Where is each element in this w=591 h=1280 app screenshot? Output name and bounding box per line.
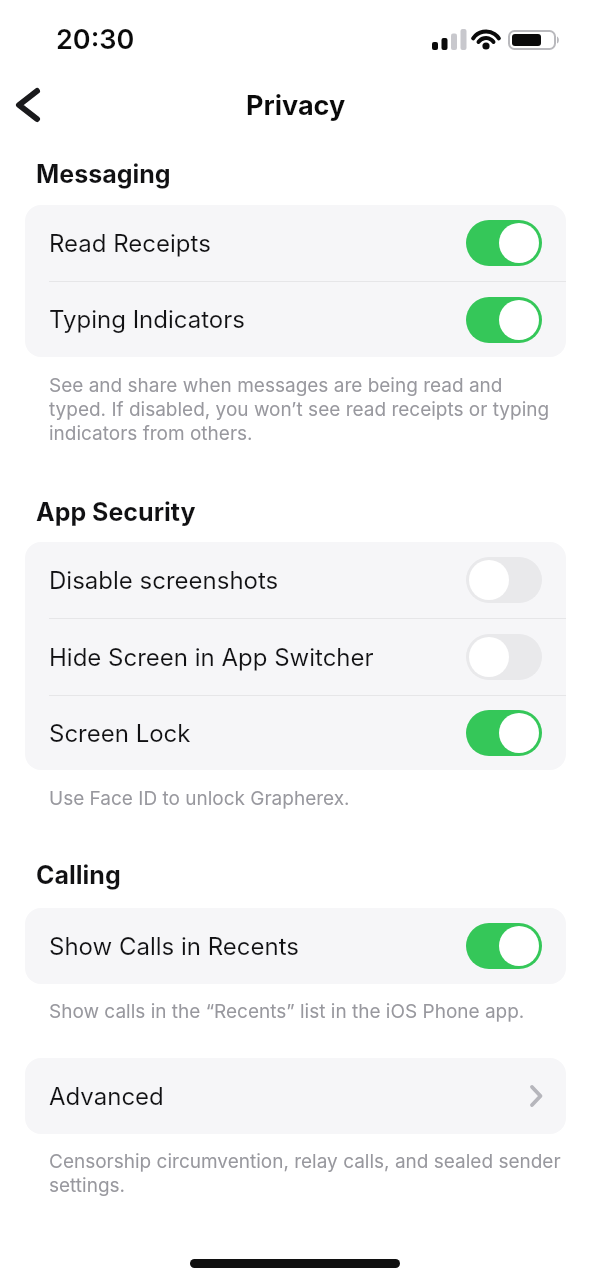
staticText: Advanced [49,1082,164,1111]
button[interactable] [469,223,539,263]
button[interactable] [469,560,539,600]
staticText: Disable screenshots [49,566,279,595]
button[interactable] [6,85,50,125]
staticText: Read Receipts [49,229,211,258]
staticText: Privacy [246,89,346,122]
staticText: Show calls in the “Recents” list in the … [49,1000,525,1023]
button[interactable] [469,300,539,340]
button[interactable]: Screen Lock [25,696,566,770]
staticText: Calling [36,860,121,890]
button[interactable] [469,713,539,753]
staticText: Screen Lock [49,719,191,748]
button[interactable]: Advanced [25,1058,566,1134]
staticText: 20:30 [56,23,135,56]
button[interactable]: Show Calls in Recents [25,908,566,984]
staticText: Typing Indicators [49,305,245,334]
button[interactable]: Disable screenshots [25,542,566,618]
button[interactable] [469,926,539,966]
button[interactable]: Typing Indicators [25,282,566,357]
button[interactable]: Hide Screen in App Switcher [25,619,566,695]
button[interactable] [469,637,539,677]
staticText: App Security [36,497,196,527]
staticText: Messaging [36,159,171,189]
staticText: Use Face ID to unlock Grapherex. [49,787,350,810]
staticText: Hide Screen in App Switcher [49,643,374,672]
button[interactable]: Read Receipts [25,205,566,281]
staticText: See and share when messages are being re… [49,374,550,445]
staticText: Show Calls in Recents [49,932,299,961]
staticText: Censorship circumvention, relay calls, a… [49,1150,561,1197]
